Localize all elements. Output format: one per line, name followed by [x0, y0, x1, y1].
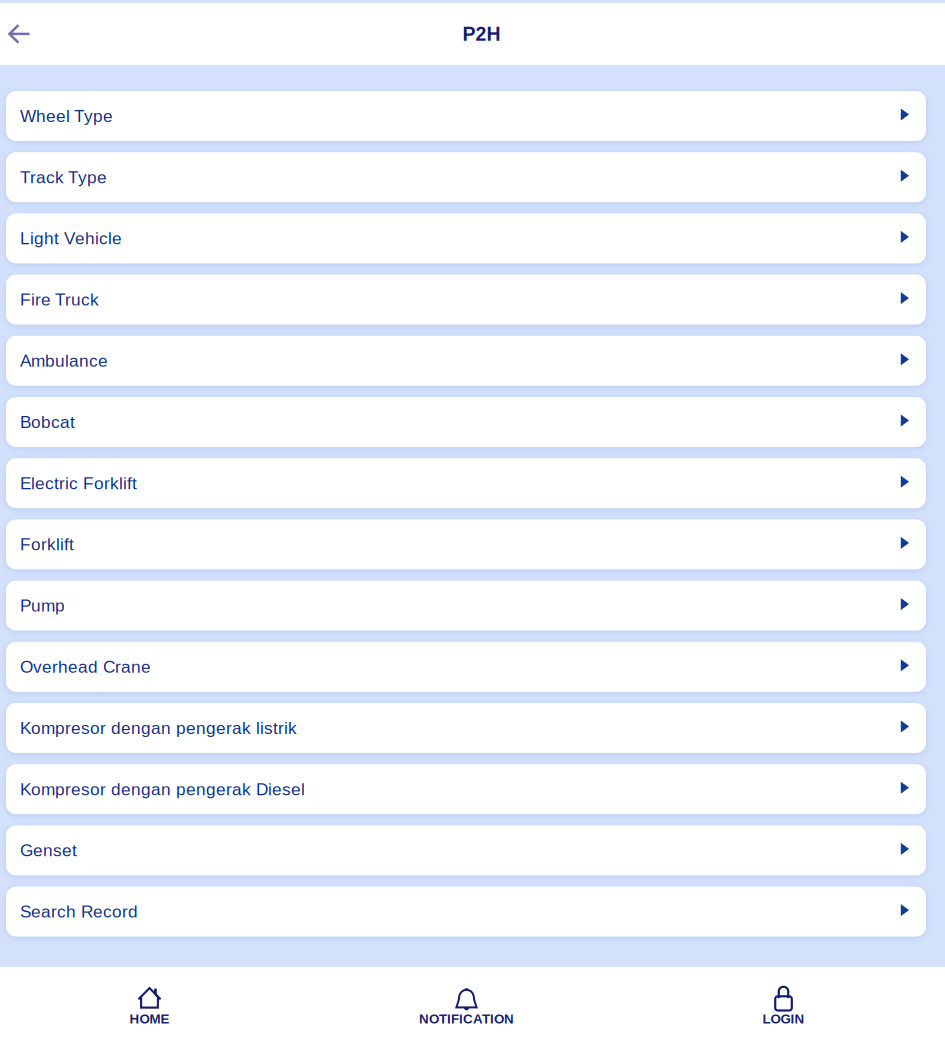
button[interactable]: Wheel Type	[6, 91, 926, 141]
staticText: LOGIN	[762, 1012, 804, 1026]
staticText: Kompresor dengan pengerak Diesel	[20, 780, 305, 799]
button[interactable]: Track Type	[6, 152, 926, 202]
staticText: Ambulance	[20, 351, 108, 370]
button[interactable]: HOME	[0, 985, 308, 1027]
staticText: Genset	[20, 841, 77, 860]
staticText: Search Record	[20, 902, 138, 921]
staticText: Fire Truck	[20, 290, 99, 309]
staticText: NOTIFICATION	[419, 1012, 514, 1026]
button[interactable]: Kompresor dengan pengerak listrik	[6, 703, 926, 753]
button[interactable]: Electric Forklift	[6, 458, 926, 508]
button[interactable]: Forklift	[6, 519, 926, 569]
staticText: Kompresor dengan pengerak listrik	[20, 718, 297, 738]
button[interactable]: Ambulance	[6, 336, 926, 386]
staticText: Pump	[20, 596, 65, 615]
button[interactable]: Genset	[6, 825, 926, 875]
button[interactable]: LOGIN	[625, 985, 942, 1027]
button[interactable]: Search Record	[6, 887, 926, 937]
button[interactable]: Light Vehicle	[6, 213, 926, 263]
button[interactable]: Fire Truck	[6, 275, 926, 325]
staticText: Light Vehicle	[20, 229, 122, 248]
button[interactable]: NOTIFICATION	[308, 985, 625, 1027]
staticText: Track Type	[20, 168, 107, 187]
button[interactable]: Overhead Crane	[6, 642, 926, 692]
button[interactable]: Kompresor dengan pengerak Diesel	[6, 764, 926, 814]
staticText: HOME	[129, 1012, 169, 1026]
staticText: Forklift	[20, 535, 74, 554]
staticText: Electric Forklift	[20, 474, 137, 493]
button[interactable]: Pump	[6, 581, 926, 631]
staticText: P2H	[462, 23, 500, 45]
staticText: Bobcat	[20, 412, 75, 432]
staticText: Wheel Type	[20, 106, 113, 126]
staticText: Overhead Crane	[20, 657, 151, 676]
button[interactable]: Back	[0, 13, 45, 55]
button[interactable]: Bobcat	[6, 397, 926, 447]
